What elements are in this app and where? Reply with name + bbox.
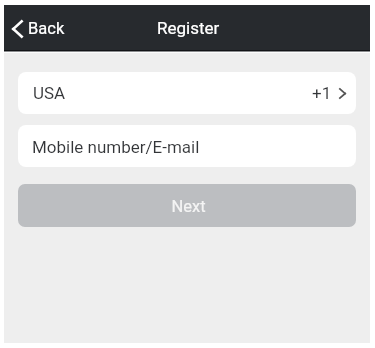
button[interactable]: Next xyxy=(18,184,356,227)
button[interactable]: USA xyxy=(18,72,356,114)
other: Back xyxy=(12,20,23,38)
staticText: Register xyxy=(157,18,220,38)
staticText: USA xyxy=(33,83,66,103)
button[interactable]: Back xyxy=(4,5,79,51)
staticText: Back xyxy=(28,19,65,38)
staticText: Next xyxy=(171,197,206,216)
staticText: Mobile number/E-mail xyxy=(32,137,200,157)
button[interactable]: Mobile number/E-mail xyxy=(18,125,356,167)
staticText: +1 xyxy=(312,83,332,103)
